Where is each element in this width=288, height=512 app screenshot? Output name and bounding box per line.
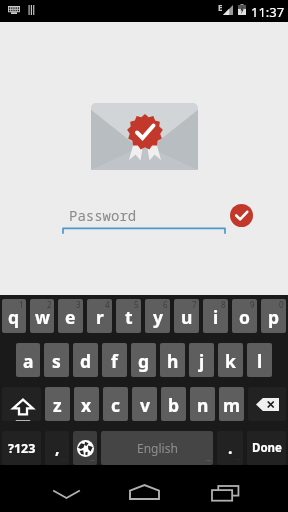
staticText: 3 (76, 299, 81, 310)
staticText: ··· (90, 456, 95, 464)
staticText: 5 (134, 299, 139, 310)
button[interactable]: English (101, 431, 213, 465)
staticText: s (52, 349, 61, 373)
staticText: i (213, 305, 219, 329)
staticText: v (140, 393, 150, 417)
button[interactable]: z (45, 387, 70, 421)
staticText: 2 (47, 299, 52, 310)
button[interactable]: a (16, 343, 40, 377)
staticText: E (218, 2, 223, 13)
button[interactable]: d (73, 343, 98, 377)
staticText: 1 (19, 299, 24, 310)
staticText: y (153, 305, 163, 329)
button[interactable]: . (217, 431, 243, 465)
staticText: f (111, 349, 118, 373)
staticText: c (111, 393, 121, 417)
staticText: d (80, 349, 92, 373)
button[interactable]: t (116, 299, 141, 333)
staticText: k (225, 349, 236, 373)
staticText: 4 (105, 299, 110, 310)
button[interactable]: r (87, 299, 112, 333)
staticText: e (65, 305, 76, 329)
staticText: x (81, 393, 92, 417)
staticText: b (168, 393, 180, 417)
staticText: z (53, 393, 62, 417)
staticText: 8 (221, 299, 226, 310)
staticText: u (181, 305, 193, 329)
button[interactable]: Shift (2, 387, 41, 421)
staticText: ?123 (8, 440, 36, 457)
button[interactable]: , (45, 431, 69, 465)
button[interactable]: Done (247, 431, 286, 465)
button[interactable]: p (261, 299, 286, 333)
staticText: 6 (163, 299, 168, 310)
staticText: a (23, 349, 34, 373)
button[interactable]: k (218, 343, 243, 377)
staticText: r (96, 305, 104, 329)
staticText: 11:37 (251, 3, 285, 21)
staticText: w (35, 305, 50, 329)
staticText: Done (252, 440, 282, 456)
staticText: 7 (192, 299, 197, 310)
button[interactable]: c (103, 387, 128, 421)
button[interactable]: b (161, 387, 186, 421)
button[interactable]: Change language (73, 431, 97, 465)
button[interactable]: u (174, 299, 199, 333)
button[interactable]: o (232, 299, 257, 333)
button[interactable]: n (190, 387, 215, 421)
button[interactable]: m (219, 387, 244, 421)
staticText: g (138, 349, 150, 373)
staticText: 0 (279, 299, 284, 310)
button[interactable]: f (102, 343, 127, 377)
button[interactable]: h (160, 343, 185, 377)
button[interactable]: Recent apps (201, 465, 249, 512)
button[interactable]: w (30, 299, 54, 333)
staticText: j (199, 349, 205, 373)
staticText: l (257, 349, 263, 373)
button[interactable]: Home (120, 465, 168, 512)
staticText: q (8, 305, 20, 329)
staticText: m (223, 393, 241, 417)
staticText: . (228, 437, 233, 459)
staticText: o (239, 305, 250, 329)
button[interactable]: Backspace (248, 387, 286, 421)
button[interactable]: q (2, 299, 26, 333)
staticText: h (167, 349, 179, 373)
button[interactable]: Submit (230, 204, 253, 227)
button[interactable]: x (74, 387, 99, 421)
staticText: ··· (206, 456, 211, 464)
staticText: English (137, 440, 178, 456)
button[interactable]: v (132, 387, 157, 421)
button[interactable]: i (203, 299, 228, 333)
button[interactable]: ?123 (2, 431, 41, 465)
staticText: 9 (250, 299, 255, 310)
button[interactable]: Back (42, 465, 90, 512)
button[interactable]: l (247, 343, 272, 377)
button[interactable]: e (58, 299, 83, 333)
button[interactable]: s (44, 343, 69, 377)
button[interactable]: y (145, 299, 170, 333)
staticText: p (268, 305, 280, 329)
button[interactable]: g (131, 343, 156, 377)
staticText: t (125, 305, 133, 329)
staticText: , (55, 437, 60, 459)
staticText: Password (69, 206, 137, 225)
button[interactable]: j (189, 343, 214, 377)
staticText: n (197, 393, 209, 417)
